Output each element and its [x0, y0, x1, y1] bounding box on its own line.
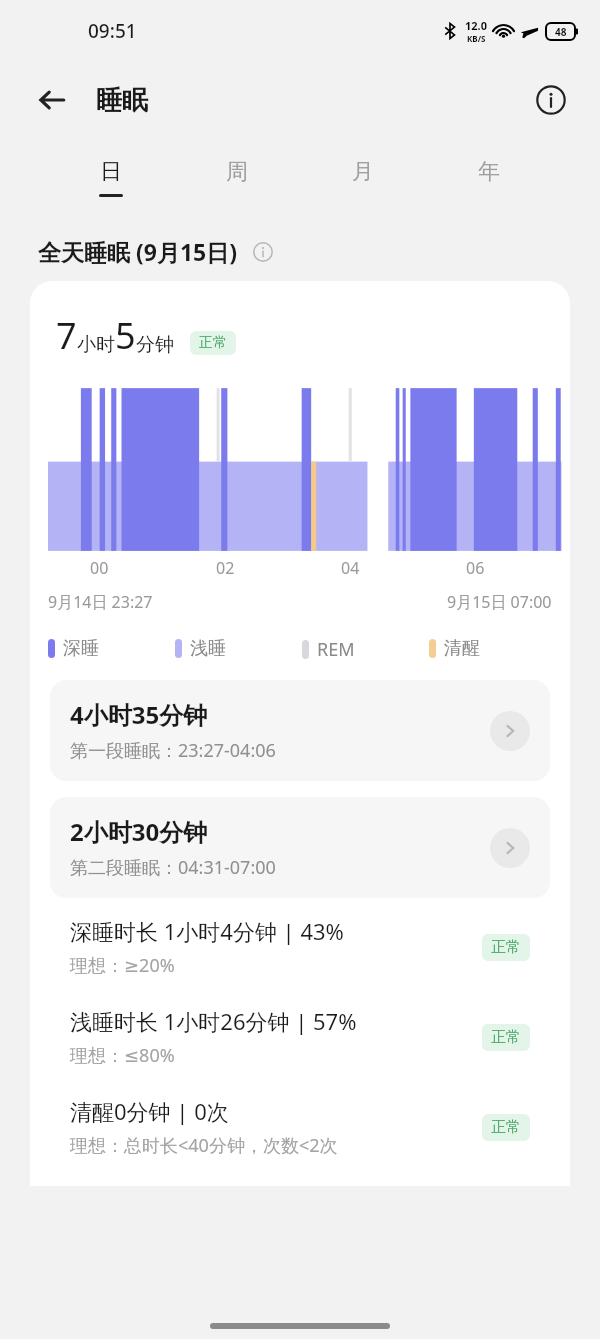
staticText: 12.0 [465, 18, 487, 33]
staticText: 04 [341, 557, 360, 579]
staticText: 浅睡 [190, 637, 226, 660]
button[interactable]: 清醒0分钟 | 0次 [50, 1092, 550, 1162]
staticText: 周 [226, 158, 248, 186]
staticText: 浅睡时长 1小时26分钟 | 57% [70, 1006, 357, 1036]
staticText: 理想：≤80% [70, 1043, 175, 1068]
staticText: 睡眠 [96, 84, 148, 117]
staticText: 年 [478, 158, 500, 186]
button[interactable]: Back [28, 76, 76, 124]
button[interactable]: Info [528, 77, 574, 123]
staticText: KB/S [467, 33, 486, 44]
staticText: 深睡时长 1小时4分钟 | 43% [70, 916, 344, 946]
staticText: 00 [90, 557, 109, 579]
staticText: 第一段睡眠：23:27-04:06 [70, 738, 276, 763]
button[interactable]: 月 [300, 138, 426, 216]
staticText: 清醒 [444, 637, 480, 660]
staticText: 2小时30分钟 [70, 815, 208, 848]
button[interactable]: 周 [174, 138, 300, 216]
staticText: 9月15日 07:00 [447, 591, 552, 613]
button[interactable]: Info [250, 239, 276, 265]
staticText: 正常 [199, 334, 227, 352]
staticText: REM [317, 637, 355, 662]
staticText: 正常 [491, 1028, 521, 1047]
staticText: 02 [216, 557, 235, 579]
staticText: 理想：总时长<40分钟，次数<2次 [70, 1133, 338, 1158]
button[interactable]: 深睡时长 1小时4分钟 | 43% [50, 912, 550, 982]
staticText: 深睡 [63, 637, 99, 660]
button[interactable]: 日 [48, 138, 174, 216]
staticText: 全天睡眠 (9月15日) [38, 236, 238, 267]
staticText: 09:51 [88, 18, 137, 44]
staticText: 理想：≥20% [70, 953, 175, 978]
staticText: 7 [56, 311, 77, 360]
staticText: 5 [115, 311, 136, 360]
button[interactable]: 浅睡时长 1小时26分钟 | 57% [50, 1002, 550, 1072]
staticText: 日 [100, 158, 122, 186]
staticText: 48 [555, 25, 567, 39]
staticText: 9月14日 23:27 [48, 591, 153, 613]
staticText: 小时 [77, 333, 115, 357]
staticText: 清醒0分钟 | 0次 [70, 1096, 229, 1126]
staticText: 第二段睡眠：04:31-07:00 [70, 855, 276, 880]
staticText: 月 [352, 158, 374, 186]
button[interactable]: 年 [426, 138, 552, 216]
staticText: 正常 [491, 1118, 521, 1137]
button[interactable]: 4小时35分钟 [50, 680, 550, 781]
staticText: 分钟 [136, 333, 174, 357]
button[interactable]: 2小时30分钟 [50, 797, 550, 898]
staticText: 06 [466, 557, 485, 579]
staticText: 4小时35分钟 [70, 698, 208, 731]
staticText: 正常 [491, 938, 521, 957]
